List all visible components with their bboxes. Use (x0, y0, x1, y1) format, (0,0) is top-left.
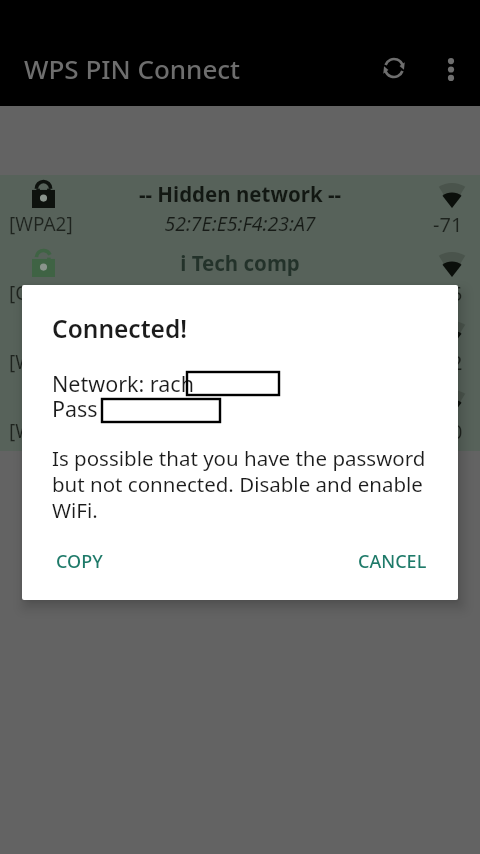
button[interactable]: More options (429, 47, 473, 91)
staticText: WPS PIN Connect (24, 51, 241, 86)
button[interactable]: i Tech comp (0, 244, 480, 313)
staticText: Network: rach (52, 369, 194, 398)
staticText: [WPA2] (9, 211, 73, 237)
staticText: 52:7E:E5:F4:23:A7 (0, 210, 480, 237)
staticText: -55 (433, 280, 463, 307)
staticText: -80 (433, 418, 463, 445)
button[interactable]: -- Hidden network -- (0, 175, 480, 244)
staticText: -- Hidden network -- (0, 180, 480, 208)
staticText: [OPEN] (9, 280, 73, 306)
staticText: -71 (433, 211, 463, 238)
button[interactable]: COPY (42, 539, 117, 584)
staticText: i Tech comp (0, 249, 480, 277)
button[interactable]: CANCEL (344, 539, 441, 584)
staticText: COPY (56, 549, 103, 574)
staticText: [WPA2] (9, 418, 73, 444)
staticText: 8C:0F:6F:2A:31:C2 (0, 348, 480, 375)
staticText: Connected! (52, 312, 188, 345)
button[interactable]: Refresh (372, 46, 416, 90)
button[interactable]: rachid (0, 313, 480, 382)
staticText: Pass (52, 394, 98, 423)
staticText: Is possible that you have the password b… (52, 444, 428, 524)
staticText: CANCEL (358, 549, 427, 574)
staticText: -62 (433, 349, 463, 376)
button[interactable]: Maroc Telecom (0, 382, 480, 451)
staticText: Maroc Telecom (0, 387, 480, 415)
staticText: A0:21:B7:55:09:D1 (0, 417, 480, 444)
staticText: 4C:5E:0C:1F:22:B0 (0, 279, 480, 306)
staticText: [WPA2] (9, 349, 73, 375)
staticText: rachid (0, 318, 480, 346)
